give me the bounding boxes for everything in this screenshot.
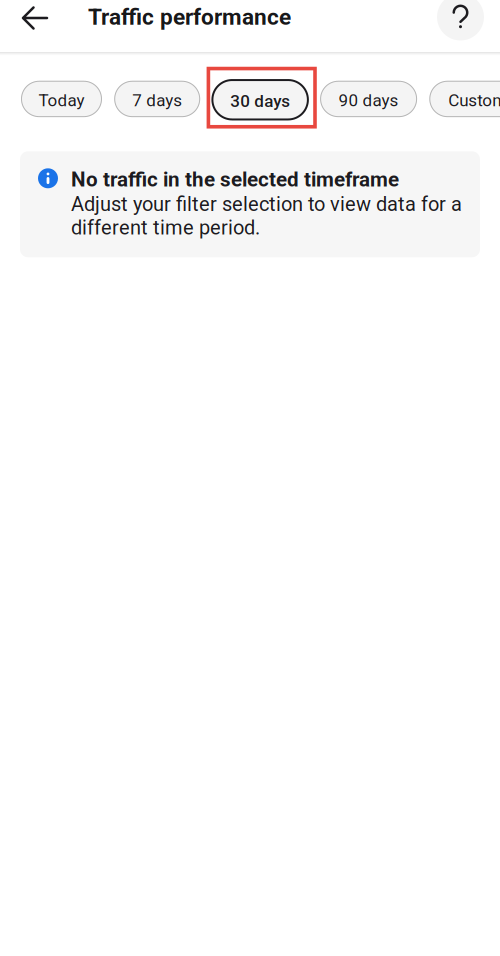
- button[interactable]: Custom: [429, 81, 500, 117]
- staticText: No traffic in the selected timeframe: [71, 167, 399, 191]
- staticText: 7 days: [132, 90, 182, 110]
- button[interactable]: Back: [0, 0, 88, 34]
- staticText: Today: [38, 90, 84, 110]
- staticText: Adjust your filter selection to view dat…: [71, 192, 462, 239]
- staticText: 30 days: [230, 91, 290, 111]
- button[interactable]: Today: [21, 81, 102, 117]
- button[interactable]: 7 days: [114, 81, 200, 117]
- button[interactable]: 90 days: [320, 81, 417, 117]
- staticText: 90 days: [339, 90, 399, 110]
- button[interactable]: 30 days: [212, 80, 308, 119]
- staticText: Traffic performance: [88, 4, 291, 30]
- button[interactable]: Help: [437, 0, 484, 40]
- staticText: Custom: [448, 90, 500, 110]
